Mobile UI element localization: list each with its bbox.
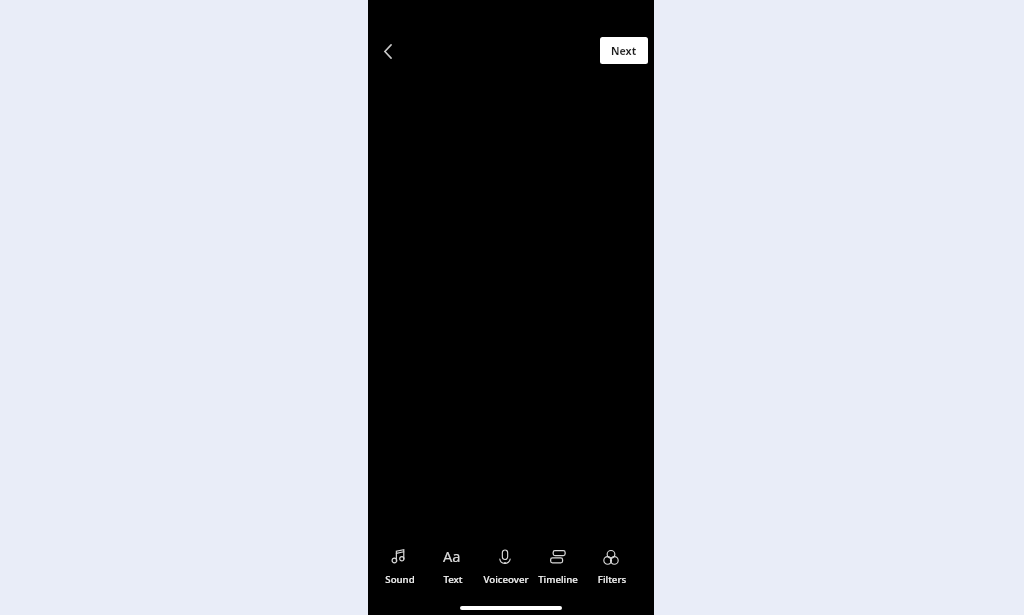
staticText: Sound <box>374 573 426 586</box>
button[interactable]: Sound <box>374 542 426 590</box>
staticText: Text <box>427 573 479 586</box>
button[interactable]: Next <box>600 37 648 64</box>
staticText: Voiceover <box>480 573 532 586</box>
staticText: Next <box>611 44 637 58</box>
button[interactable]: Filters <box>586 542 638 590</box>
staticText: Aa <box>443 546 461 566</box>
staticText: Filters <box>586 573 638 586</box>
staticText: Timeline <box>532 573 584 586</box>
button[interactable]: Aa <box>427 542 479 590</box>
button[interactable]: Timeline <box>532 542 584 590</box>
button[interactable]: Back <box>371 34 405 68</box>
button[interactable]: Voiceover <box>480 542 532 590</box>
